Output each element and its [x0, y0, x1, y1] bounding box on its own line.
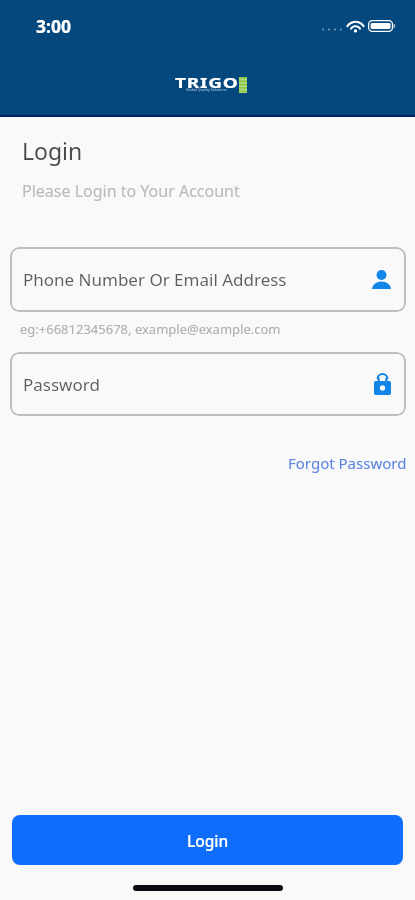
button[interactable]: Phone Number Or Email Address	[10, 247, 406, 312]
staticText: 3:00	[36, 14, 71, 38]
staticText: Please Login to Your Account	[22, 180, 240, 202]
staticText: Forgot Password	[288, 453, 407, 473]
staticText: eg:+66812345678, example@example.com	[20, 320, 281, 338]
button[interactable]: Password	[10, 352, 406, 416]
button[interactable]: Forgot Password	[288, 450, 415, 476]
staticText: Global Quality Solutions	[186, 87, 227, 92]
button[interactable]: Login	[12, 815, 403, 865]
staticText: Login	[22, 135, 83, 166]
other: Password	[374, 374, 391, 395]
staticText: TRIGO	[175, 74, 239, 92]
staticText: Password	[23, 373, 100, 396]
other: User account	[372, 270, 391, 289]
staticText: Phone Number Or Email Address	[23, 268, 287, 291]
staticText: Login	[187, 830, 229, 851]
